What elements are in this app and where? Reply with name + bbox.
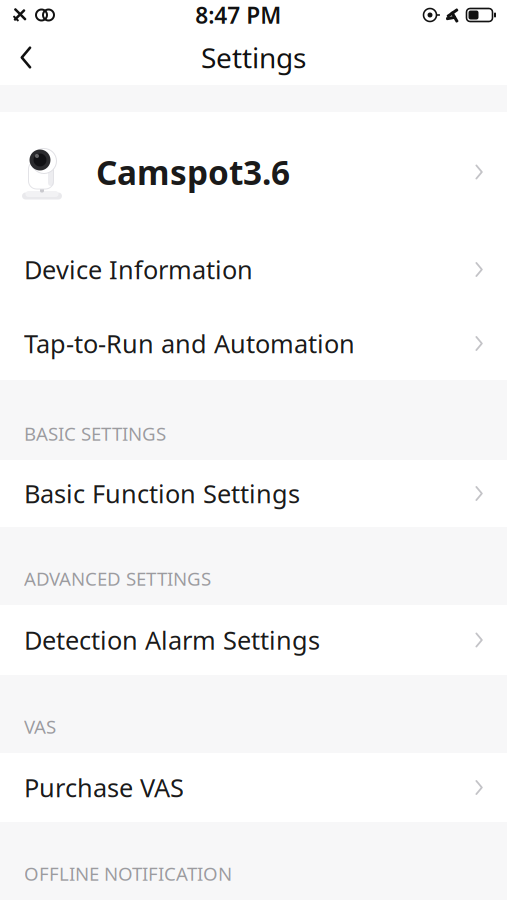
staticText: Settings [201, 39, 306, 76]
button[interactable]: Tap-to-Run and Automation [0, 307, 507, 380]
staticText: Basic Function Settings [24, 477, 300, 510]
staticText: BASIC SETTINGS [24, 421, 166, 446]
staticText: Purchase VAS [24, 771, 184, 804]
staticText: Device Information [24, 253, 253, 286]
button[interactable]: Camspot3.6 [0, 112, 507, 232]
staticText: Detection Alarm Settings [24, 623, 320, 657]
staticText: OFFLINE NOTIFICATION [24, 861, 232, 886]
staticText: Camspot3.6 [96, 150, 290, 194]
button[interactable]: Purchase VAS [0, 753, 507, 822]
staticText: VAS [24, 714, 56, 739]
button[interactable]: Detection Alarm Settings [0, 605, 507, 675]
button[interactable]: Back [0, 30, 52, 85]
button[interactable]: Basic Function Settings [0, 460, 507, 527]
staticText: 8:47 PM [195, 0, 281, 30]
staticText: ADVANCED SETTINGS [24, 566, 211, 591]
button[interactable]: Device Information [0, 232, 507, 307]
staticText: Tap-to-Run and Automation [24, 327, 355, 360]
